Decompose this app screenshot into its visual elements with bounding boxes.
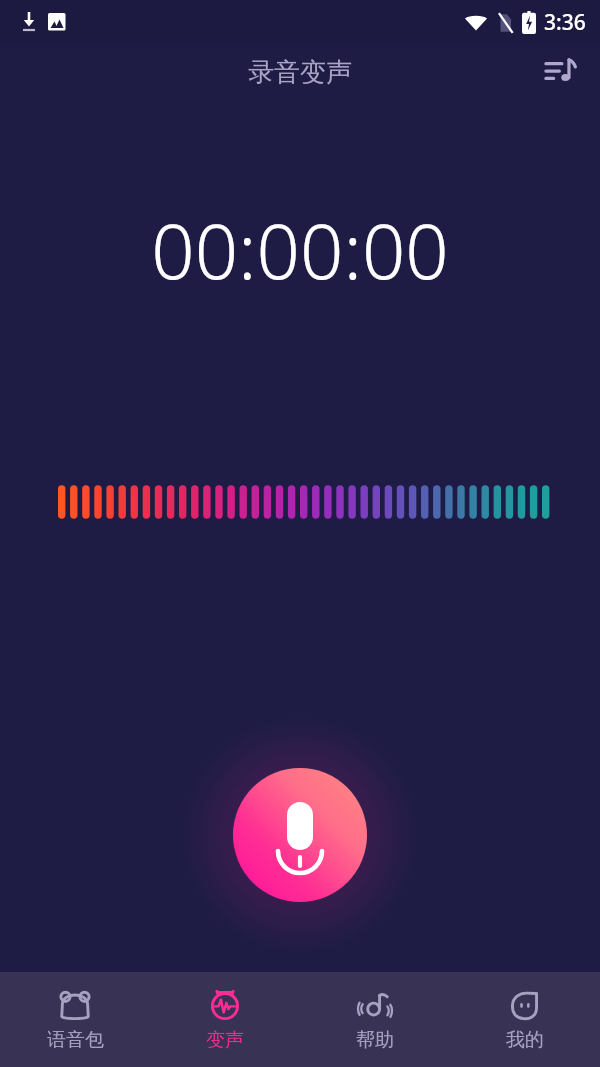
button[interactable]: Recordings list xyxy=(536,48,584,96)
staticText: 变声 xyxy=(206,1028,244,1052)
button[interactable]: 变声 xyxy=(150,980,300,1060)
staticText: 录音变声 xyxy=(248,56,352,89)
staticText: 语音包 xyxy=(47,1028,104,1052)
staticText: 我的 xyxy=(506,1028,544,1052)
button[interactable]: Start recording xyxy=(200,735,400,935)
staticText: 3:36 xyxy=(544,8,586,37)
staticText: 00:00:00 xyxy=(0,198,600,302)
button[interactable]: 语音包 xyxy=(0,980,150,1060)
staticText: 帮助 xyxy=(356,1028,394,1052)
button[interactable]: 帮助 xyxy=(300,980,450,1060)
button[interactable]: 我的 xyxy=(450,980,600,1060)
